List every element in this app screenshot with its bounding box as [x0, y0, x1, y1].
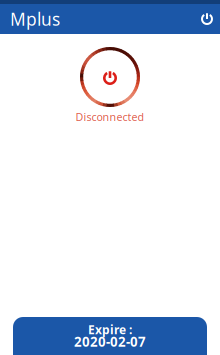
staticText: Disconnected: [75, 110, 144, 124]
button[interactable]: Disconnected: [75, 47, 144, 124]
staticText: 2020-02-07: [74, 333, 146, 350]
staticText: Mplus: [10, 7, 60, 30]
staticText: Expire :: [88, 321, 132, 337]
button[interactable]: Expire :: [13, 317, 207, 355]
button[interactable]: Power: [194, 6, 220, 32]
